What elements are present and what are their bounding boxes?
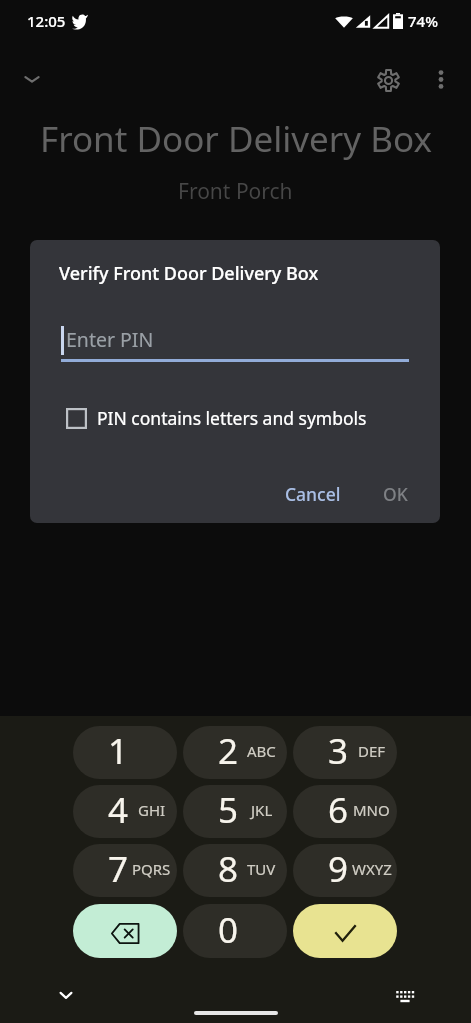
staticText: 74% [408,11,438,31]
button[interactable]: Backspace [73,904,177,958]
button[interactable]: 0 [183,904,287,958]
button[interactable]: Enter [293,904,397,958]
button[interactable]: 3 [293,726,397,779]
staticText: Front Porch [178,177,293,206]
staticText: 7 [108,845,129,893]
button[interactable]: OK [373,472,418,516]
staticText: 1 [108,727,129,775]
staticText: 6 [328,786,349,834]
button[interactable]: 5 [183,785,287,838]
staticText: Enter PIN [66,326,154,353]
staticText: TUV [247,859,276,879]
button[interactable]: More options [423,59,459,95]
staticText: 0 [218,906,239,954]
staticText: PQRS [132,859,171,879]
button[interactable]: Cancel [275,472,351,516]
staticText: 8 [218,845,239,893]
staticText: 9 [328,845,349,893]
staticText: OK [383,482,408,506]
button[interactable]: 4 [73,785,177,838]
staticText: Front Door Delivery Box [40,115,432,163]
staticText: 4 [108,786,129,834]
button[interactable]: 2 [183,726,287,779]
staticText: Cancel [285,482,341,506]
staticText: 3 [328,727,349,775]
staticText: ABC [247,741,276,761]
staticText: 5 [218,786,239,834]
staticText: Verify Front Door Delivery Box [59,261,319,286]
staticText: JKL [251,800,273,820]
staticText: GHI [138,800,166,820]
staticText: PIN contains letters and symbols [97,406,367,430]
button[interactable]: PIN contains letters and symbols [66,406,367,430]
button[interactable]: 1 [73,726,177,779]
button[interactable]: Switch keyboard [387,977,423,1013]
button[interactable]: Hide keyboard [48,977,84,1013]
button[interactable]: 8 [183,844,287,897]
button[interactable]: 6 [293,785,397,838]
staticText: DEF [358,741,386,761]
button[interactable]: Settings [367,59,409,101]
button[interactable]: Collapse [12,59,52,99]
button[interactable]: 9 [293,844,397,897]
staticText: 12:05 [27,11,66,31]
staticText: 2 [218,727,239,775]
staticText: WXYZ [352,859,392,879]
staticText: MNO [353,800,390,820]
button[interactable]: 7 [73,844,177,897]
